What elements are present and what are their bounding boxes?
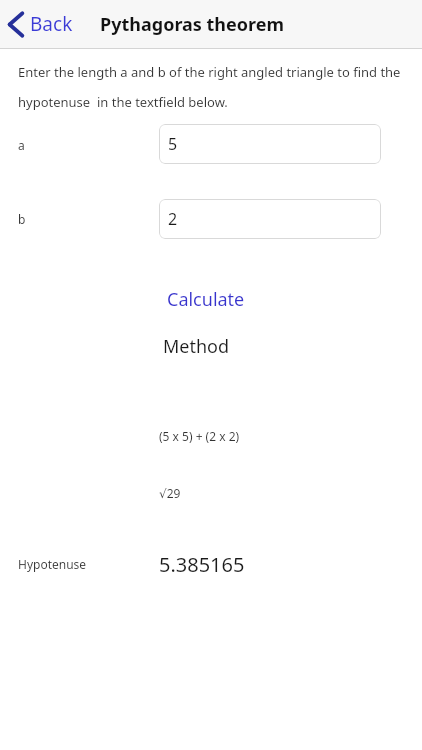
staticText: (5 x 5) + (2 x 2)	[159, 428, 240, 444]
button[interactable]: 5	[159, 124, 381, 164]
button[interactable]: 2	[159, 199, 381, 239]
staticText: hypotenuse in the textfield below.	[18, 93, 228, 111]
staticText: Method	[163, 334, 230, 359]
staticText: 5	[168, 133, 178, 155]
button[interactable]: Back	[4, 6, 77, 42]
staticText: Back	[30, 11, 73, 37]
button[interactable]: Calculate	[163, 285, 249, 314]
staticText: b	[18, 211, 26, 227]
staticText: √29	[159, 485, 181, 501]
staticText: a	[18, 137, 25, 153]
staticText: Calculate	[167, 287, 245, 312]
staticText: 5.385165	[159, 551, 245, 578]
staticText: Pythagoras theorem	[100, 12, 285, 37]
staticText: Enter the length a and b of the right an…	[18, 63, 401, 81]
staticText: Hypotenuse	[18, 556, 87, 572]
staticText: 2	[168, 208, 178, 230]
